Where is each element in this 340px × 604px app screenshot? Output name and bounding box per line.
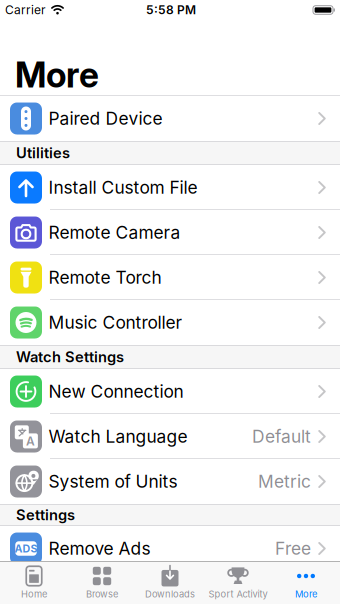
staticText: Remote Torch [48, 267, 161, 288]
staticText: Watch Settings [16, 348, 124, 366]
button[interactable]: ADS [0, 526, 340, 571]
staticText: Install Custom File [48, 177, 197, 198]
staticText: System of Units [48, 471, 177, 492]
staticText: New Connection [48, 381, 183, 402]
button[interactable]: Browse [68, 565, 136, 599]
button[interactable]: New Connection [0, 369, 340, 414]
button[interactable]: A [0, 414, 340, 459]
button[interactable]: System of Units [0, 459, 340, 504]
staticText: More [15, 54, 99, 95]
staticText: Music Controller [48, 312, 182, 333]
staticText: Sport Activity [208, 588, 267, 599]
staticText: 5:58 PM [146, 3, 196, 17]
staticText: More [295, 588, 317, 599]
button[interactable]: Remote Torch [0, 255, 340, 300]
staticText: Settings [16, 506, 75, 524]
staticText: Metric [258, 471, 311, 492]
staticText: Watch Language [48, 426, 187, 447]
staticText: Paired Device [48, 108, 162, 129]
staticText: Free [275, 538, 311, 559]
staticText: Home [21, 588, 47, 599]
button[interactable]: Install Custom File [0, 165, 340, 210]
staticText: Downloads [145, 588, 195, 599]
button[interactable]: Downloads [136, 565, 204, 599]
button[interactable]: Remote Camera [0, 210, 340, 255]
button[interactable]: More [272, 565, 340, 599]
staticText: ADS [14, 542, 37, 555]
staticText: Carrier [5, 3, 46, 17]
staticText: Default [252, 426, 311, 447]
staticText: Remove Ads [48, 538, 150, 559]
staticText: Utilities [16, 144, 70, 162]
button[interactable]: Sport Activity [204, 565, 272, 599]
button[interactable]: Home [0, 565, 68, 599]
staticText: Browse [86, 588, 118, 599]
button[interactable]: Paired Device [0, 96, 340, 141]
staticText: A [26, 434, 35, 448]
button[interactable]: Music Controller [0, 300, 340, 345]
staticText: Remote Camera [48, 222, 180, 243]
